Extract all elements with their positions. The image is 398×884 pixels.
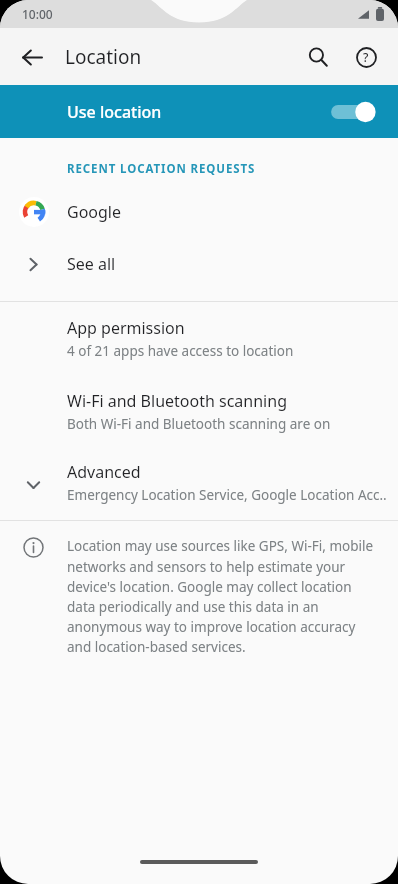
staticText: 10:00 — [22, 6, 53, 22]
button[interactable]: Use location — [0, 85, 398, 138]
button[interactable]: Back — [10, 35, 54, 79]
staticText: Location — [65, 44, 142, 70]
button[interactable]: Google — [0, 186, 398, 238]
button[interactable]: Advanced — [0, 448, 398, 520]
staticText: App permission — [67, 317, 185, 339]
staticText: Advanced — [67, 461, 141, 483]
staticText: 4 of 21 apps have access to location — [67, 342, 294, 360]
staticText: Google — [67, 201, 122, 223]
staticText: Both Wi-Fi and Bluetooth scanning are on — [67, 415, 331, 433]
staticText: Emergency Location Service, Google Locat… — [67, 486, 387, 504]
staticText: ? — [363, 49, 369, 65]
button[interactable]: App permission — [0, 302, 398, 375]
staticText: Use location — [67, 101, 162, 123]
button[interactable]: Wi-Fi and Bluetooth scanning — [0, 375, 398, 448]
staticText: RECENT LOCATION REQUESTS — [67, 161, 256, 177]
staticText: See all — [67, 253, 116, 275]
button[interactable]: Help — [342, 33, 390, 81]
button[interactable]: See all — [0, 238, 398, 290]
staticText: Wi-Fi and Bluetooth scanning — [67, 390, 287, 412]
staticText: Location may use sources like GPS, Wi-Fi… — [67, 537, 376, 656]
button[interactable]: Search — [294, 33, 342, 81]
